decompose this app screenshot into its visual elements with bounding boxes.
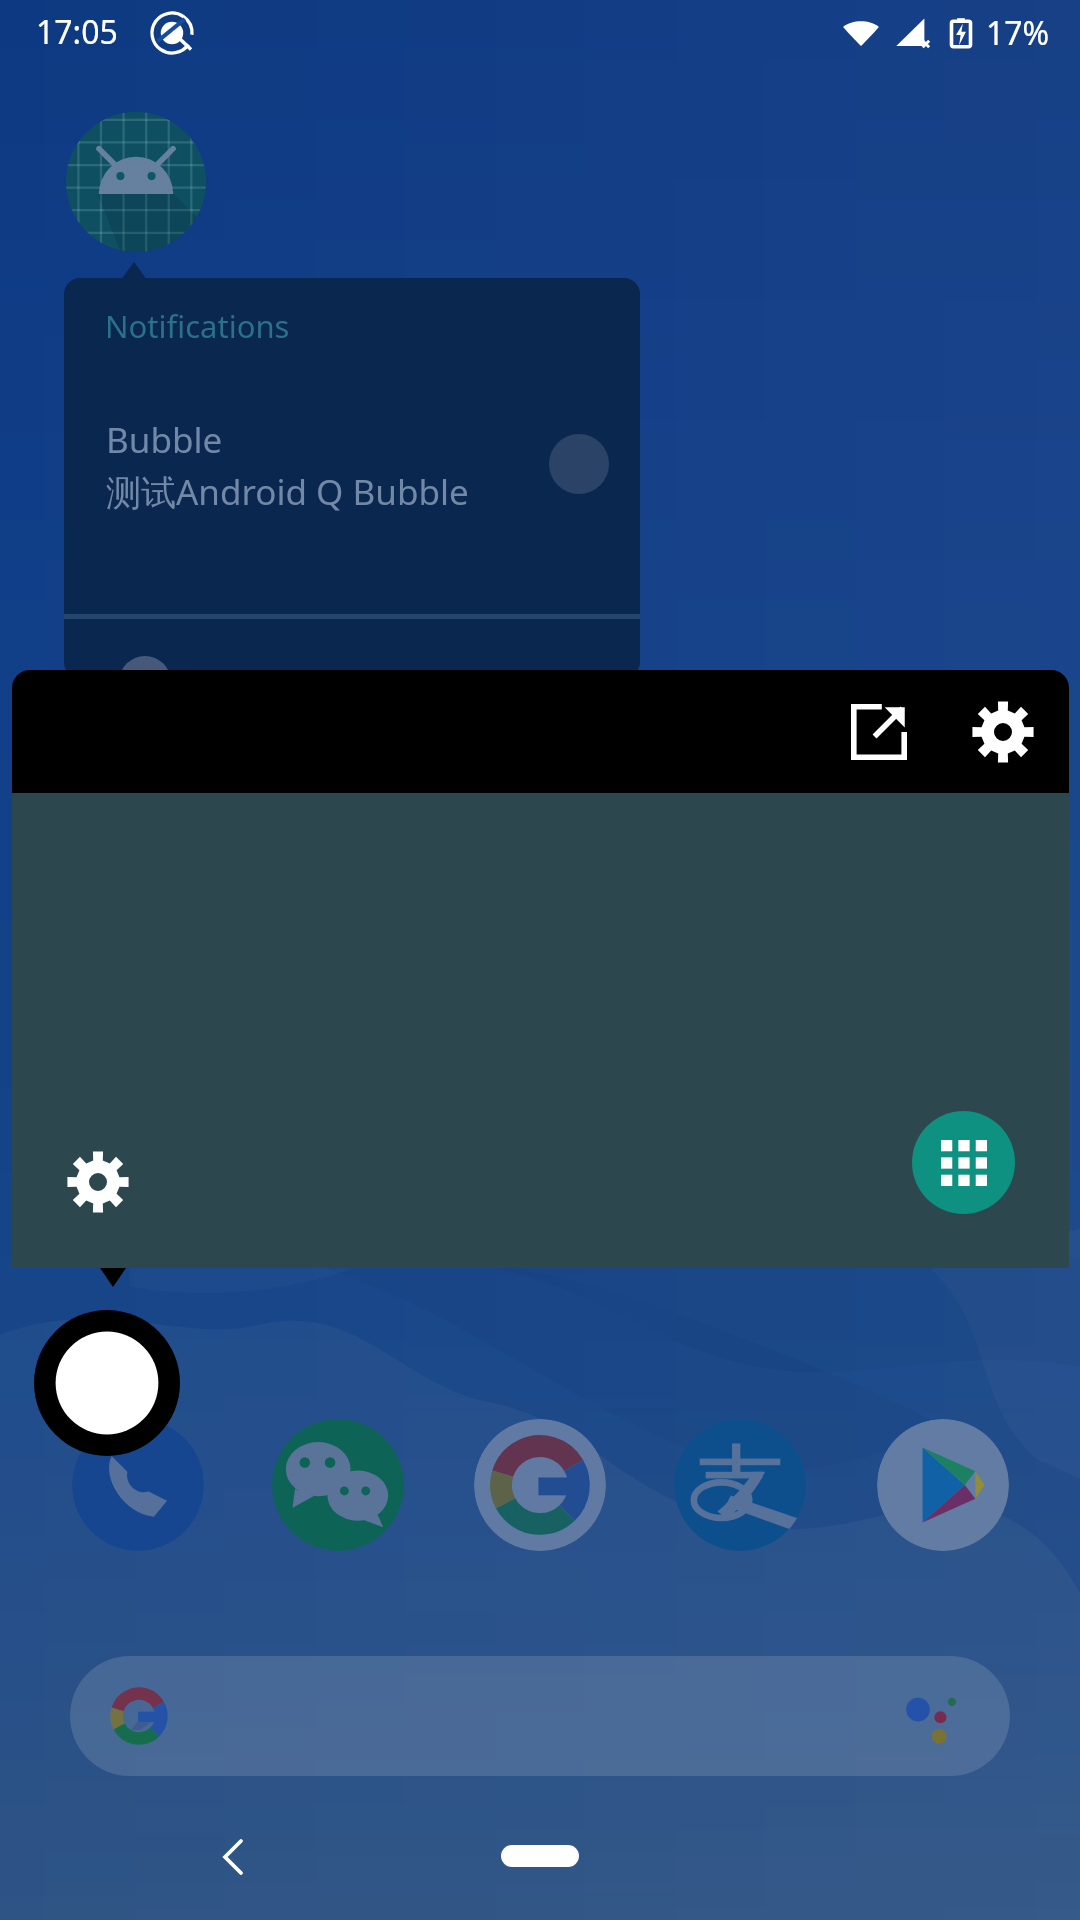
button[interactable] — [70, 1656, 1010, 1776]
button[interactable]: Play Store — [877, 1419, 1009, 1551]
button[interactable]: Back — [191, 1815, 275, 1899]
button[interactable]: Home — [501, 1845, 579, 1867]
button[interactable]: Bubble — [66, 112, 206, 252]
button[interactable]: Settings — [60, 1144, 136, 1220]
staticText: Bubble — [106, 416, 223, 464]
button[interactable]: Open in new — [833, 686, 925, 778]
staticText: 测试Android Q Bubble — [106, 468, 469, 516]
button[interactable]: Apps — [912, 1111, 1015, 1214]
staticText: Notifications — [105, 305, 290, 347]
button[interactable]: WeChat — [272, 1419, 404, 1551]
button[interactable]: Settings — [957, 686, 1049, 778]
button[interactable]: Notifications — [64, 278, 640, 678]
staticText: 17% — [986, 11, 1050, 55]
staticText: 17:05 — [36, 10, 118, 54]
button[interactable]: Google — [474, 1419, 606, 1551]
button[interactable]: Phone — [72, 1419, 204, 1551]
button[interactable]: Alipay — [674, 1419, 806, 1551]
